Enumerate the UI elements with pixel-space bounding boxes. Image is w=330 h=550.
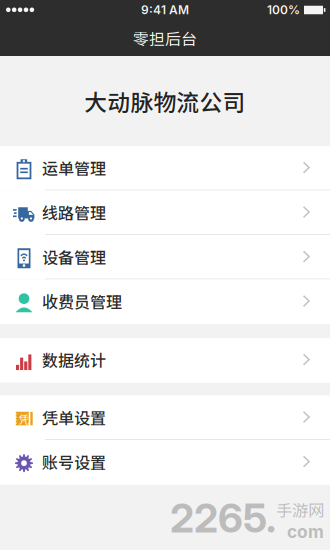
button[interactable]: 凭	[0, 395, 330, 440]
staticText: 线路管理	[42, 201, 106, 224]
staticText: 收费员管理	[42, 290, 122, 313]
staticText: 运单管理	[42, 156, 106, 179]
button[interactable]: 运单管理	[0, 146, 330, 190]
staticText: 9:41 AM	[141, 3, 189, 17]
staticText: 数据统计	[42, 348, 106, 371]
staticText: 手游网	[276, 498, 324, 521]
staticText: 凭	[18, 411, 29, 426]
staticText: 大动脉物流公司	[84, 85, 245, 117]
staticText: 100%	[267, 3, 300, 17]
staticText: com	[287, 521, 324, 542]
button[interactable]: 设备管理	[0, 235, 330, 279]
button[interactable]: 线路管理	[0, 190, 330, 235]
staticText: 零担后台	[133, 26, 197, 50]
staticText: 账号设置	[42, 450, 106, 473]
staticText: 凭单设置	[42, 406, 106, 429]
button[interactable]: 收费员管理	[0, 279, 330, 324]
button[interactable]: 数据统计	[0, 338, 330, 382]
staticText: 2265.	[170, 494, 276, 542]
button[interactable]: 账号设置	[0, 440, 330, 484]
staticText: 设备管理	[42, 245, 106, 268]
